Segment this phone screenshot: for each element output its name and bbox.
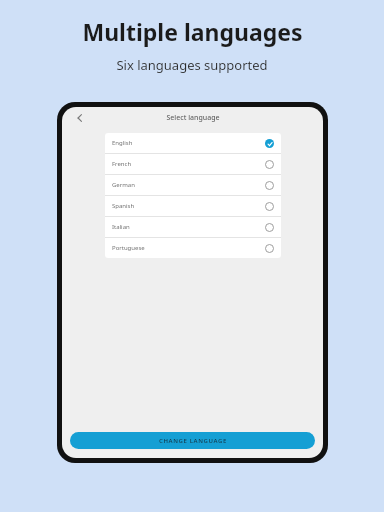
staticText: Italian bbox=[112, 223, 265, 231]
staticText: Select language bbox=[166, 113, 220, 123]
staticText: German bbox=[112, 181, 265, 189]
button[interactable]: English bbox=[105, 133, 281, 154]
button[interactable]: CHANGE LANGUAGE bbox=[70, 432, 315, 449]
button[interactable]: Italian bbox=[105, 217, 281, 238]
staticText: CHANGE LANGUAGE bbox=[159, 437, 227, 445]
button[interactable]: Portuguese bbox=[105, 238, 281, 258]
staticText: Portuguese bbox=[112, 244, 265, 252]
button[interactable]: German bbox=[105, 175, 281, 196]
staticText: Spanish bbox=[112, 202, 265, 210]
staticText: French bbox=[112, 160, 265, 168]
staticText: Six languages supported bbox=[116, 56, 268, 74]
button[interactable]: French bbox=[105, 154, 281, 175]
staticText: English bbox=[112, 139, 265, 147]
button[interactable]: Spanish bbox=[105, 196, 281, 217]
staticText: Multiple languages bbox=[82, 16, 303, 47]
button[interactable]: Back bbox=[70, 108, 90, 128]
